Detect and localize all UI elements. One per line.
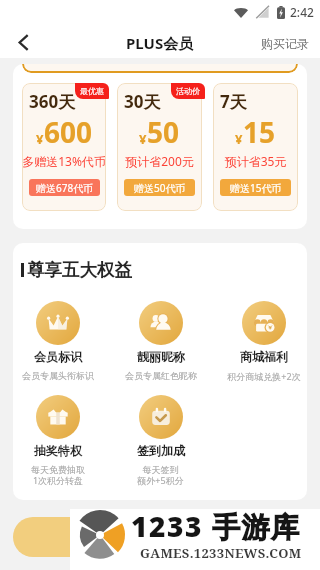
staticText: ¥ <box>36 130 44 148</box>
staticText: ¥ <box>139 130 147 148</box>
button[interactable]: 抽奖特权 <box>13 395 109 486</box>
staticText: 靓丽昵称 <box>137 349 185 364</box>
staticText: 360天 <box>29 90 76 113</box>
staticText: 抽奖特权 <box>34 443 82 458</box>
staticText: 50 <box>147 113 180 151</box>
staticText: GAMES.1233NEWS.COM <box>140 544 302 562</box>
staticText: 30天 <box>124 90 161 113</box>
button[interactable]: 30天 <box>117 83 202 211</box>
staticText: 预计省35元 <box>213 153 298 169</box>
staticText: 预计省200元 <box>117 153 202 169</box>
staticText: 15 <box>243 113 276 151</box>
staticText: 最优惠 <box>80 86 104 96</box>
staticText: 7天 <box>220 90 247 113</box>
button[interactable]: 360天 <box>22 83 106 211</box>
staticText: 签到加成 <box>137 443 185 458</box>
staticText: 会员专属头衔标识 <box>22 370 94 381</box>
staticText: 商城福利 <box>240 349 288 364</box>
staticText: PLUS会员 <box>126 33 194 53</box>
button[interactable]: 商城福利 <box>212 301 307 382</box>
staticText: 赠送678代币 <box>36 181 94 195</box>
staticText: 每天免费抽取 1次积分转盘 <box>31 464 85 486</box>
staticText: 会员标识 <box>34 349 82 364</box>
button[interactable] <box>13 517 253 557</box>
staticText: 2:42 <box>290 4 314 20</box>
staticText: 活动价 <box>176 86 200 96</box>
button[interactable]: Back <box>6 24 40 58</box>
button[interactable]: 会员标识 <box>13 301 109 381</box>
staticText: ¥ <box>235 130 243 148</box>
button[interactable]: 靓丽昵称 <box>109 301 212 381</box>
staticText: 购买记录 <box>261 36 309 51</box>
staticText: 赠送50代币 <box>134 181 186 195</box>
button[interactable]: 7天 <box>213 83 298 211</box>
button[interactable]: 签到加成 <box>109 395 212 486</box>
staticText: 600 <box>44 113 93 151</box>
staticText: 尊享五大权益 <box>27 259 132 281</box>
button[interactable]: 购买记录 <box>258 28 312 55</box>
staticText: 多赠送13%代币 <box>22 153 106 169</box>
staticText: 赠送15代币 <box>230 181 282 195</box>
staticText: 会员专属红色昵称 <box>125 370 197 381</box>
staticText: 每天签到 额外+5积分 <box>137 464 184 486</box>
staticText: 积分商城兑换+2次 <box>227 370 301 382</box>
staticText: 1233 手游库 <box>131 507 301 545</box>
